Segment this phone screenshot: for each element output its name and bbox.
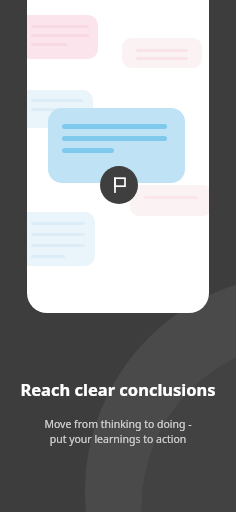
button[interactable]: Flag conclusion: [100, 166, 138, 204]
button[interactable]: [48, 108, 185, 183]
staticText: Reach clear conclusions: [20, 378, 216, 400]
staticText: Move from thinking to doing - put your l…: [44, 417, 192, 446]
